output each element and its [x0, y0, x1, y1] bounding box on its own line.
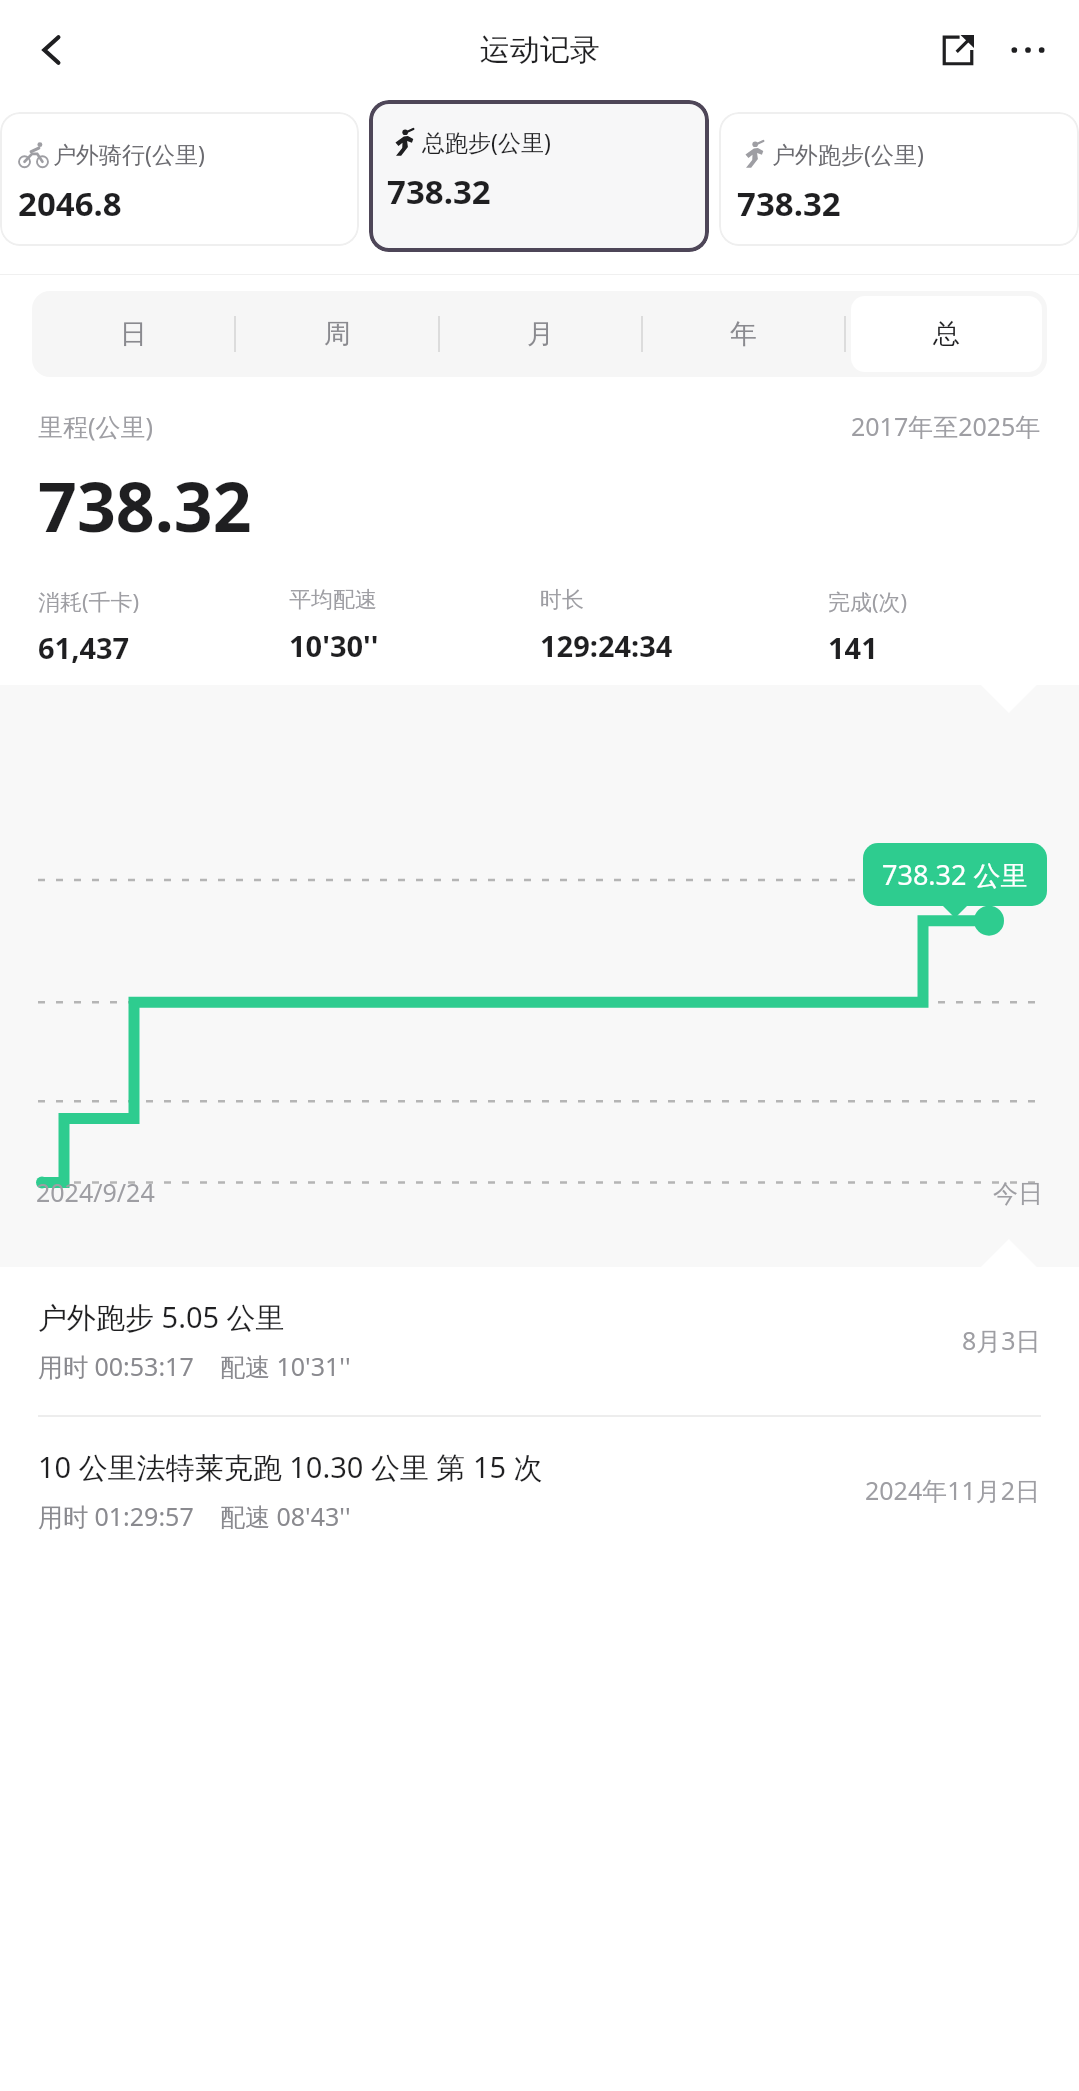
button[interactable]: 总 [851, 296, 1042, 372]
staticText: 完成(次) [828, 586, 908, 616]
staticText: 日 [120, 317, 147, 351]
button[interactable]: More options [999, 21, 1057, 79]
staticText: 2017年至2025年 [851, 409, 1041, 443]
button[interactable]: Share [929, 21, 987, 79]
staticText: 总跑步(公里) [422, 126, 551, 157]
button[interactable]: 户外跑步(公里) [719, 112, 1079, 246]
button[interactable]: 10 公里法特莱克跑 10.30 公里 第 15 次 [0, 1417, 1079, 1565]
staticText: 户外骑行(公里) [53, 138, 205, 169]
staticText: 配速 08'43'' [220, 1499, 351, 1533]
staticText: 2046.8 [18, 181, 122, 226]
staticText: 消耗(千卡) [38, 586, 140, 616]
button[interactable]: 户外跑步 5.05 公里 [0, 1267, 1079, 1417]
staticText: 户外跑步(公里) [772, 138, 924, 169]
button[interactable]: 年 [643, 291, 844, 377]
staticText: 年 [730, 317, 757, 351]
staticText: 时长 [540, 586, 584, 614]
staticText: 8月3日 [962, 1323, 1041, 1357]
staticText: 里程(公里) [38, 409, 154, 443]
staticText: 738.32 [38, 459, 252, 552]
staticText: 配速 10'31'' [220, 1349, 351, 1383]
staticText: 141 [828, 628, 878, 667]
staticText: 738.32 [737, 181, 841, 226]
staticText: 2024/9/24 [36, 1175, 155, 1209]
staticText: 61,437 [38, 628, 130, 667]
staticText: 738.32 公里 [882, 856, 1028, 893]
staticText: 129:24:34 [540, 626, 673, 665]
staticText: 运动记录 [480, 31, 600, 69]
staticText: 今日 [993, 1178, 1043, 1209]
staticText: 周 [324, 317, 351, 351]
staticText: 用时 01:29:57 [38, 1499, 194, 1533]
button[interactable]: 月 [440, 291, 641, 377]
button[interactable]: 总跑步(公里) [369, 100, 709, 252]
button[interactable]: 日 [32, 291, 234, 377]
staticText: 738.32 [387, 169, 491, 214]
staticText: 平均配速 [289, 586, 377, 614]
staticText: 10 公里法特莱克跑 10.30 公里 第 15 次 [38, 1447, 543, 1487]
button[interactable]: Back [22, 20, 82, 80]
staticText: 2024年11月2日 [865, 1473, 1041, 1507]
staticText: 10'30'' [289, 626, 379, 665]
button[interactable]: 周 [236, 291, 438, 377]
staticText: 用时 00:53:17 [38, 1349, 194, 1383]
staticText: 总 [933, 317, 960, 351]
button[interactable]: 户外骑行(公里) [0, 112, 359, 246]
staticText: 月 [527, 317, 554, 351]
staticText: 户外跑步 5.05 公里 [38, 1297, 285, 1337]
